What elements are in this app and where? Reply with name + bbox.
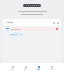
button[interactable]: More options — [57, 22, 59, 24]
button[interactable]: Header badge — [23, 4, 41, 7]
button[interactable]: Home — [9, 66, 16, 70]
button[interactable] — [10, 33, 59, 36]
button[interactable]: Activity — [35, 66, 42, 70]
button[interactable] — [10, 27, 59, 30]
button[interactable] — [10, 37, 59, 39]
button[interactable]: Profile — [48, 66, 55, 70]
button[interactable] — [5, 27, 59, 31]
button[interactable] — [5, 21, 14, 24]
button[interactable]: Explore — [22, 66, 29, 70]
button[interactable]: Search — [53, 22, 55, 24]
